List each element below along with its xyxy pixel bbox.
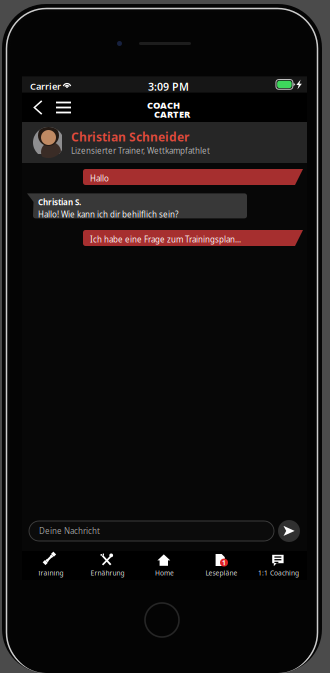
staticText: Deine Nachricht	[39, 526, 100, 536]
staticText: Lizensierter Trainer, Wettkampfathlet	[71, 145, 210, 156]
button[interactable]: Zurück	[27, 93, 48, 122]
staticText: 1:1 Coaching	[258, 569, 299, 577]
button[interactable]: Training	[22, 551, 79, 580]
staticText: Ernährung	[90, 569, 124, 577]
staticText: Carrier	[30, 80, 61, 92]
staticText: 3:09 PM	[148, 79, 189, 94]
staticText: Ich habe eine Frage zum Trainingsplan...	[90, 234, 241, 245]
staticText: 1	[222, 558, 226, 567]
staticText: Home	[155, 569, 174, 577]
button[interactable]: Ernährung	[79, 551, 136, 580]
staticText: CARTER	[154, 108, 190, 120]
button[interactable]: Christian Schneider	[22, 122, 307, 163]
staticText: Christian S.	[38, 197, 81, 207]
staticText: Training	[37, 569, 63, 577]
staticText: Lesepläne	[205, 569, 237, 577]
button[interactable]: Home	[136, 551, 193, 580]
button[interactable]: Menü	[50, 93, 77, 122]
staticText: COACH	[147, 99, 180, 111]
staticText: Hallo	[90, 173, 109, 184]
button[interactable]: Deine Nachricht	[29, 521, 274, 541]
button[interactable]: 1	[193, 551, 250, 580]
button[interactable]: Senden	[278, 520, 300, 542]
staticText: Christian Schneider	[71, 129, 189, 145]
staticText: Hallo! Wie kann ich dir behilflich sein?	[38, 209, 178, 220]
button[interactable]: 1:1 Coaching	[250, 551, 307, 580]
